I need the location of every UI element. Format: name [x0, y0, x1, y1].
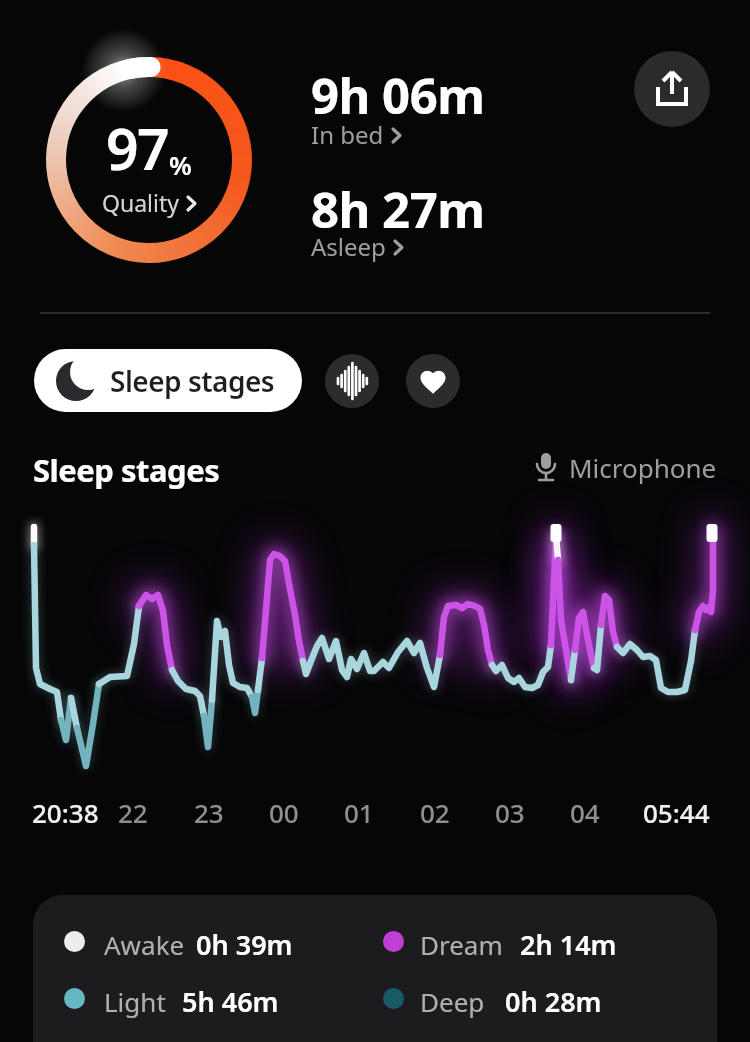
button[interactable]: Microphone [535, 450, 717, 485]
button[interactable]: Asleep [311, 230, 403, 263]
staticText: 00 [269, 795, 299, 830]
button[interactable] [634, 51, 710, 127]
staticText: Light [104, 984, 166, 1019]
staticText: Microphone [569, 450, 717, 485]
staticText: Asleep [311, 230, 386, 263]
staticText: Sleep stages [110, 362, 275, 400]
staticText: 05:44 [643, 795, 710, 830]
button[interactable]: In bed [311, 118, 401, 151]
button[interactable] [406, 354, 460, 408]
staticText: Deep [420, 984, 485, 1019]
button[interactable]: Sleep stages [34, 349, 302, 412]
staticText: Dream [420, 927, 503, 962]
staticText: 8h 27m [311, 176, 485, 243]
staticText: 22 [118, 795, 148, 830]
staticText: 23 [194, 795, 224, 830]
staticText: 03 [495, 795, 525, 830]
staticText: 0h 39m [196, 926, 293, 963]
button[interactable] [325, 354, 379, 408]
staticText: Quality [102, 187, 179, 218]
staticText: 9h 06m [311, 62, 485, 129]
staticText: 2h 14m [520, 926, 617, 963]
staticText: Sleep stages [33, 449, 220, 491]
staticText: 20:38 [32, 795, 99, 830]
staticText: 97 [106, 109, 169, 187]
staticText: 02 [420, 795, 450, 830]
staticText: % [169, 147, 192, 182]
staticText: 01 [344, 795, 374, 830]
staticText: In bed [311, 118, 384, 151]
button[interactable]: 97 [46, 57, 252, 263]
staticText: 0h 28m [505, 983, 602, 1020]
staticText: 5h 46m [182, 983, 279, 1020]
staticText: Awake [104, 927, 185, 962]
staticText: 04 [570, 795, 600, 830]
